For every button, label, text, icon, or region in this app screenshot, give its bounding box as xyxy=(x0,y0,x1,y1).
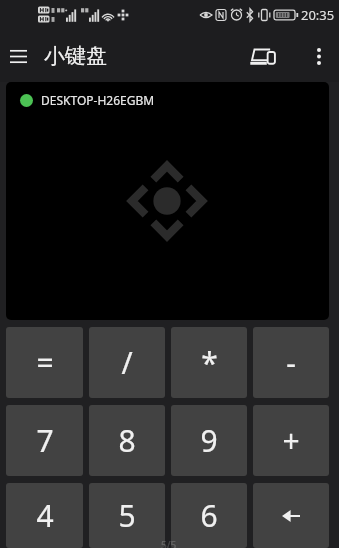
button[interactable]: Backspace xyxy=(253,483,329,548)
staticText: = xyxy=(36,342,54,383)
button[interactable]: 7 xyxy=(6,405,83,476)
button[interactable]: - xyxy=(253,327,329,398)
button[interactable]: 4 xyxy=(6,483,83,548)
button[interactable]: * xyxy=(171,327,247,398)
button[interactable]: + xyxy=(253,405,329,476)
staticText: * xyxy=(201,342,218,383)
button[interactable]: Touchpad xyxy=(6,82,329,320)
staticText: 5 xyxy=(118,495,136,536)
button[interactable]: 5 xyxy=(89,483,165,548)
button[interactable]: More options xyxy=(300,37,338,75)
staticText: 4 xyxy=(36,495,54,536)
button[interactable]: 8 xyxy=(89,405,165,476)
staticText: / xyxy=(121,342,133,383)
button[interactable]: Navigation menu xyxy=(0,38,36,74)
staticText: 8 xyxy=(118,420,136,461)
staticText: 7 xyxy=(36,420,54,461)
button[interactable]: = xyxy=(6,327,83,398)
staticText: 小键盘 xyxy=(44,43,107,69)
button[interactable]: 9 xyxy=(171,405,247,476)
staticText: 20:35 xyxy=(301,6,335,24)
button[interactable]: / xyxy=(89,327,165,398)
button[interactable]: 6 xyxy=(171,483,247,548)
staticText: + xyxy=(282,420,300,461)
staticText: DESKTOP-H26EGBM xyxy=(41,92,155,108)
staticText: 6 xyxy=(200,495,218,536)
staticText: 5/5 xyxy=(161,538,177,548)
staticText: 9 xyxy=(200,420,218,461)
button[interactable]: Connect device xyxy=(242,34,286,78)
staticText: - xyxy=(286,342,296,383)
